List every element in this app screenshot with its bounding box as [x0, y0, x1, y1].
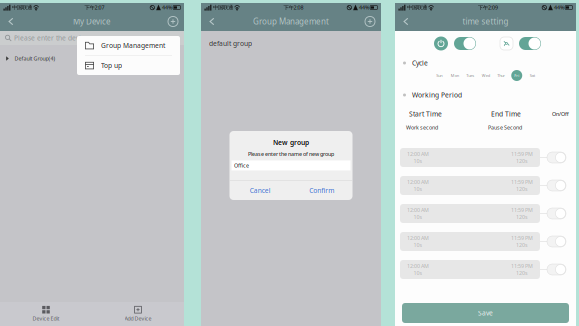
button[interactable]: Device Edit — [0, 302, 92, 326]
button[interactable]: Back — [395, 12, 417, 31]
staticText: Cancel — [250, 186, 271, 195]
staticText: Fri — [514, 73, 519, 78]
button[interactable]: Save — [402, 303, 569, 323]
staticText: 10s — [413, 157, 422, 165]
button[interactable]: Back — [201, 12, 223, 31]
staticText: 11:59 PM — [511, 178, 533, 185]
staticText: 中国联通 — [407, 4, 427, 11]
staticText: 120s — [516, 213, 528, 221]
staticText: Thur — [497, 73, 505, 78]
button[interactable]: Add — [162, 12, 184, 31]
staticText: Cycle — [412, 59, 428, 67]
staticText: New group — [273, 138, 309, 147]
staticText: 44% — [162, 4, 172, 11]
staticText: Group Management — [101, 41, 165, 50]
button[interactable]: Enable period — [547, 180, 566, 191]
button[interactable]: Enable period — [547, 152, 566, 163]
staticText: Office — [234, 162, 249, 169]
staticText: End Time — [491, 110, 521, 118]
staticText: On/Off — [552, 110, 569, 118]
staticText: Device Edit — [32, 315, 59, 322]
staticText: 10s — [413, 213, 422, 221]
button[interactable]: Back — [0, 12, 22, 31]
button[interactable]: Enable period — [547, 208, 566, 219]
staticText: Save — [478, 309, 493, 317]
staticText: Mon — [451, 73, 459, 78]
button[interactable]: Cancel — [229, 181, 291, 200]
staticText: Confirm — [309, 186, 334, 195]
button[interactable]: Timer — [519, 37, 541, 50]
staticText: Working Period — [412, 91, 462, 99]
staticText: 11:59 PM — [511, 206, 533, 213]
staticText: 下午2:08 — [283, 4, 303, 11]
staticText: 下午2:07 — [84, 4, 104, 11]
button[interactable]: Top up — [77, 56, 180, 75]
staticText: 11:59 PM — [511, 150, 533, 157]
staticText: Group Management — [253, 16, 329, 27]
button[interactable]: Enable period — [547, 264, 566, 275]
button[interactable]: Fri — [509, 70, 524, 81]
staticText: Work second — [406, 124, 438, 131]
staticText: Add Device — [124, 315, 151, 322]
staticText: Pause Second — [488, 124, 522, 131]
button[interactable]: Add group — [359, 12, 381, 31]
staticText: 12:00 AM — [407, 262, 429, 269]
button[interactable]: Group Management — [77, 36, 180, 55]
staticText: 12:00 AM — [407, 234, 429, 241]
staticText: 10s — [413, 269, 422, 277]
staticText: 44% — [359, 4, 369, 11]
button[interactable]: Add Device — [92, 302, 184, 326]
staticText: 44% — [554, 4, 564, 11]
staticText: default group — [209, 39, 252, 48]
staticText: 10s — [413, 241, 422, 249]
button[interactable]: Confirm — [291, 181, 352, 200]
staticText: 12:00 AM — [407, 178, 429, 185]
staticText: time setting — [462, 16, 508, 27]
staticText: Please enter the device name — [14, 34, 108, 42]
staticText: 12:00 AM — [407, 150, 429, 157]
staticText: 11:59 PM — [511, 234, 533, 241]
staticText: 11:59 PM — [511, 262, 533, 269]
staticText: 120s — [516, 269, 528, 277]
staticText: Wed — [482, 73, 490, 78]
button[interactable]: Enable period — [547, 236, 566, 247]
staticText: Sun — [436, 73, 442, 78]
staticText: Default Group(4) — [14, 55, 55, 62]
staticText: Sat — [530, 73, 535, 78]
staticText: 120s — [516, 241, 528, 249]
button[interactable]: Power — [454, 37, 476, 50]
staticText: Top up — [101, 61, 122, 70]
staticText: 中国联通 — [12, 4, 32, 11]
staticText: My Device — [73, 16, 111, 27]
staticText: Start Time — [409, 110, 442, 118]
staticText: 120s — [516, 157, 528, 165]
staticText: Tues — [466, 73, 474, 78]
staticText: Please enter the name of new group — [248, 150, 334, 157]
staticText: 中国联通 — [213, 4, 233, 11]
staticText: 12:00 AM — [407, 206, 429, 213]
staticText: 120s — [516, 185, 528, 193]
staticText: 10s — [413, 185, 422, 193]
staticText: 下午2:09 — [478, 4, 498, 11]
